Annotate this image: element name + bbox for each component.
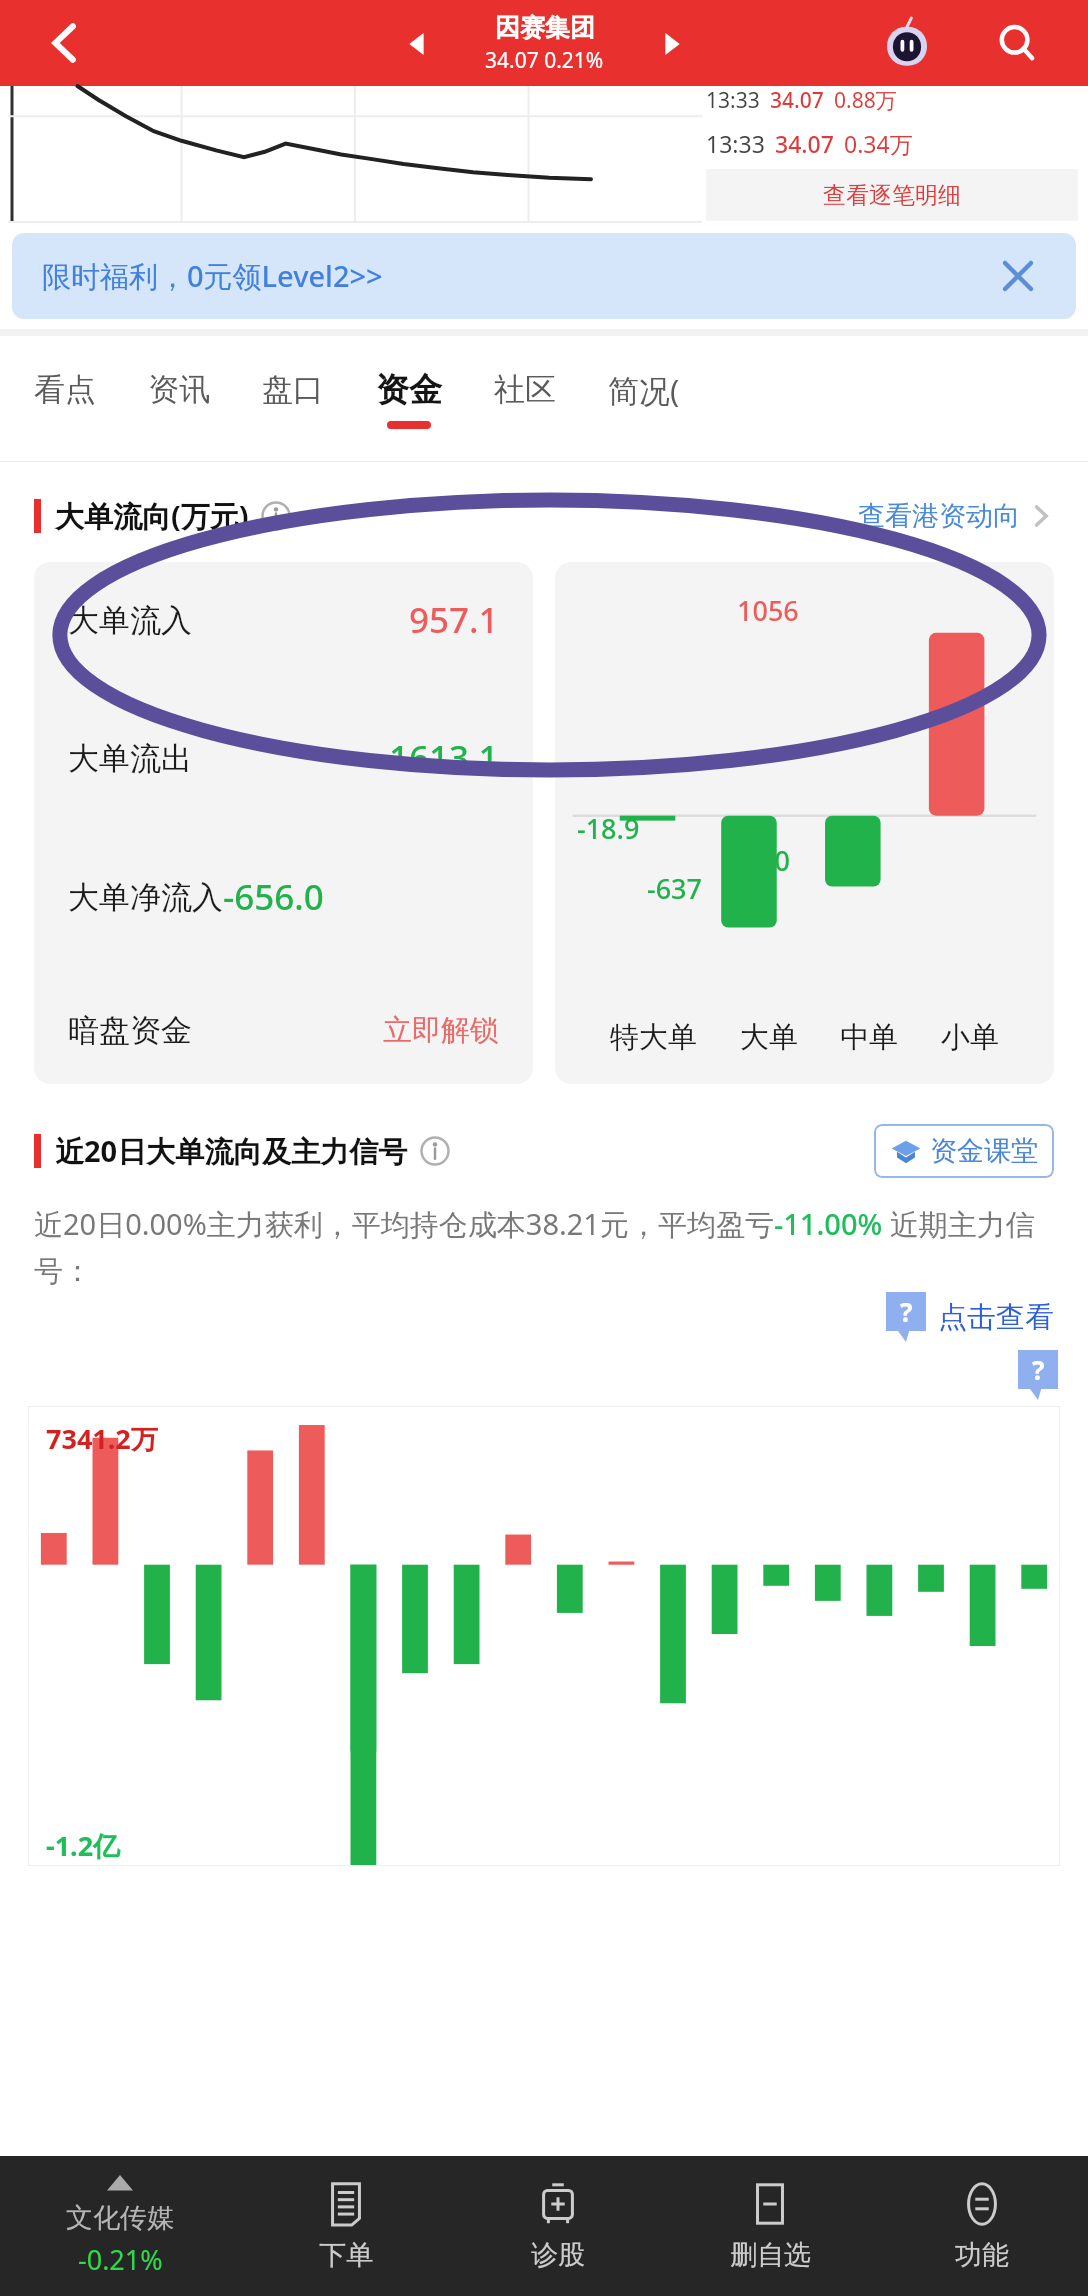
staticText: 点击查看 — [938, 1299, 1054, 1336]
staticText: 小单 — [941, 1019, 999, 1056]
staticText: 社区 — [494, 370, 556, 409]
staticText: 限时福利，0元领Level2>> — [42, 256, 990, 296]
staticText: 大单流出 — [68, 739, 192, 778]
staticText: 资金课堂 — [930, 1134, 1038, 1168]
staticText: 查看港资动向 — [858, 499, 1020, 533]
staticText: 0.88万 — [834, 86, 897, 114]
staticText: 看点 — [34, 370, 96, 409]
staticText: 13:33 — [706, 128, 765, 159]
button[interactable]: 盘口 — [262, 336, 324, 461]
button[interactable]: 下单 — [240, 2156, 452, 2296]
staticText: 34.07 — [775, 128, 834, 159]
staticText: 立即解锁 — [383, 1012, 499, 1049]
staticText: 简况( — [608, 369, 680, 411]
staticText: 7341.2万 — [46, 1420, 158, 1457]
button[interactable]: 查看港资动向 — [858, 499, 1054, 533]
staticText: 大单 — [740, 1019, 798, 1056]
staticText: 暗盘资金 — [68, 1011, 192, 1050]
button[interactable]: 7341.2万 — [28, 1406, 1060, 1866]
button[interactable]: Search — [986, 12, 1048, 74]
staticText: 近20日大单流向及主力信号 — [55, 1131, 408, 1171]
staticText: 957.1 — [409, 596, 499, 644]
staticText: 特大单 — [610, 1019, 697, 1056]
button[interactable]: ? — [886, 1292, 1054, 1342]
staticText: -0.21% — [78, 2241, 163, 2278]
button[interactable]: 看点 — [34, 336, 96, 461]
staticText: 盘口 — [262, 370, 324, 409]
button[interactable]: Next stock — [652, 24, 692, 64]
button[interactable]: 社区 — [494, 336, 556, 461]
staticText: -18.9 — [577, 810, 640, 847]
button[interactable]: 1056 — [555, 562, 1054, 1084]
staticText: 34.07 — [770, 86, 824, 114]
staticText: 1613.1 — [389, 734, 499, 782]
button[interactable]: 资讯 — [148, 336, 210, 461]
button[interactable]: 限时福利，0元领Level2>> — [12, 233, 1076, 319]
staticText: -637 — [647, 870, 702, 907]
button[interactable]: 查看逐笔明细 — [706, 169, 1078, 221]
button[interactable]: Close — [990, 248, 1046, 304]
staticText: -1.2亿 — [46, 1827, 121, 1864]
staticText: 中单 — [840, 1019, 898, 1056]
button[interactable]: 删自选 — [664, 2156, 876, 2296]
button[interactable]: AI assistant — [876, 12, 938, 74]
staticText: 1056 — [737, 592, 799, 629]
staticText: 资讯 — [148, 370, 210, 409]
staticText: 功能 — [955, 2238, 1009, 2272]
button[interactable]: 简况( — [608, 336, 680, 461]
staticText: 近20日0.00%主力获利，平均持仓成本38.21元，平均盈亏-11.00% 近… — [34, 1204, 1054, 1290]
staticText: 0.34万 — [844, 128, 913, 159]
staticText: 大单流入 — [68, 601, 192, 640]
staticText: 查看逐笔明细 — [823, 181, 961, 210]
button[interactable]: 诊股 — [452, 2156, 664, 2296]
staticText: 因赛集团 — [495, 12, 595, 43]
button[interactable]: 资金 — [376, 336, 442, 461]
button[interactable]: 功能 — [876, 2156, 1088, 2296]
staticText: 13:33 — [706, 86, 760, 114]
button[interactable]: Back — [30, 8, 100, 78]
staticText: 大单净流入 — [68, 878, 223, 917]
button[interactable]: 文化传媒 — [0, 2156, 240, 2296]
button[interactable]: Previous stock — [397, 24, 437, 64]
staticText: -656.0 — [223, 873, 324, 921]
staticText: 34.07 0.21% — [485, 46, 604, 75]
button[interactable]: 资金课堂 — [874, 1124, 1054, 1178]
staticText: ? — [1032, 1352, 1045, 1387]
button[interactable]: 大单流入 — [34, 562, 533, 1084]
staticText: 资金 — [376, 369, 442, 411]
staticText: 删自选 — [730, 2238, 811, 2272]
staticText: ? — [900, 1294, 913, 1329]
staticText: 诊股 — [531, 2238, 585, 2272]
staticText: 文化传媒 — [66, 2201, 174, 2235]
staticText: 大单流向(万元) — [55, 496, 249, 536]
staticText: 下单 — [319, 2238, 373, 2272]
staticText: -400 — [735, 842, 790, 879]
